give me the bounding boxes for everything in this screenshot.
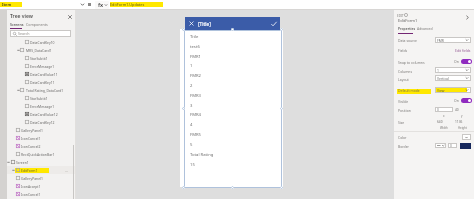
button[interactable]: StarSubtit1 [7, 94, 75, 102]
staticText: Position [398, 108, 411, 113]
button[interactable]: DataCardValue11 [7, 70, 75, 78]
other: Cancel [189, 21, 194, 26]
button[interactable]: Vertical [435, 75, 471, 81]
staticText: 1136 [455, 120, 463, 124]
staticText: Size [398, 120, 405, 125]
button[interactable]: 1 [435, 67, 471, 73]
staticText: GalleryPanel1 [21, 176, 43, 181]
staticText: Height [458, 126, 467, 130]
button[interactable]: Properties [398, 26, 416, 34]
button[interactable]: 640 [435, 119, 453, 124]
button[interactable]: ErrorMessage1 [7, 102, 75, 110]
button[interactable]: FMR [435, 37, 471, 43]
button[interactable]: Close tree view [67, 14, 73, 20]
button[interactable]: IconAccept1 [7, 182, 75, 190]
staticText: FMR2 [190, 73, 201, 79]
button[interactable]: Search [10, 30, 71, 37]
button[interactable]: View [435, 87, 471, 93]
button[interactable]: Screen1 [7, 158, 75, 166]
button[interactable]: Screens [10, 22, 24, 29]
staticText: Tree view [10, 13, 33, 20]
button[interactable]: DataCardKey11 [7, 78, 75, 86]
staticText: 5 [190, 142, 193, 148]
button[interactable]: MRS_DataCard1 [7, 46, 75, 54]
staticText: Border [398, 144, 409, 149]
button[interactable]: IconCancel1 [7, 134, 75, 142]
staticText: EDIT [397, 14, 404, 18]
staticText: 0 [437, 108, 439, 112]
staticText: ErrorMessage1 [30, 64, 55, 69]
button[interactable]: StarSubtit1 [7, 54, 75, 62]
button[interactable]: Components [26, 22, 48, 27]
button[interactable]: DataCardKey10 [7, 38, 75, 46]
button[interactable]: Total Rating_DataCard1 [7, 86, 75, 94]
button[interactable]: GalleryPanel1 [7, 174, 75, 182]
staticText: 40 [455, 108, 459, 112]
button[interactable]: Border style [435, 143, 446, 148]
button[interactable]: Edit fields [455, 48, 471, 53]
staticText: 3 [190, 103, 193, 109]
button[interactable]: 0 [448, 143, 457, 148]
staticText: On [454, 98, 459, 103]
staticText: Data source [398, 38, 418, 43]
staticText: Properties [398, 26, 416, 31]
staticText: 0 [450, 144, 452, 148]
staticText: Title [190, 34, 199, 40]
button[interactable] [110, 2, 163, 7]
button[interactable]: GalleryPanel1 [7, 126, 75, 134]
staticText: y [461, 114, 463, 118]
staticText: Default mode [398, 88, 420, 93]
button[interactable]: RectQuickActionBar1 [7, 150, 75, 158]
button[interactable]: Open panel [465, 15, 470, 20]
staticText: RectQuickActionBar1 [21, 152, 55, 157]
button[interactable]: ErrorMessage1 [7, 62, 75, 70]
staticText: fx [98, 1, 104, 8]
staticText: FMR5 [190, 132, 201, 138]
staticText: 1 [437, 68, 439, 73]
staticText: Columns [398, 69, 413, 74]
staticText: On [454, 59, 459, 64]
button[interactable]: 40 [453, 107, 471, 112]
staticText: FMR [437, 38, 444, 43]
staticText: MRS_DataCard1 [26, 48, 52, 53]
button[interactable]: Pick colour [462, 134, 471, 140]
button[interactable]: EditForm1 [7, 166, 75, 174]
staticText: Visible [398, 99, 409, 104]
staticText: GalleryPanel1 [21, 128, 43, 133]
other: Accept [271, 21, 277, 27]
button[interactable]: DataCardValue12 [7, 110, 75, 118]
staticText: Search [18, 31, 30, 36]
staticText: ... [65, 168, 68, 173]
staticText: 2 [190, 83, 193, 89]
button[interactable]: Advanced [417, 26, 433, 31]
button[interactable]: On [454, 98, 472, 103]
staticText: IconCancel1 [21, 136, 41, 141]
staticText: 4 [190, 122, 193, 128]
staticText: 640 [437, 120, 443, 124]
staticText: ErrorMessage1 [30, 104, 55, 109]
staticText: Screen1 [16, 160, 29, 165]
staticText: Total Rating_DataCard1 [26, 88, 64, 93]
button[interactable]: IconCancel1 [7, 190, 75, 198]
button[interactable] [0, 2, 22, 7]
button[interactable]: On [454, 59, 472, 64]
staticText: View [437, 88, 445, 93]
button[interactable]: IconCancel2 [7, 142, 75, 150]
staticText: EditForm1.Updates [110, 2, 145, 7]
button[interactable]: 1136 [453, 119, 471, 124]
button[interactable]: Formula bar [95, 1, 109, 9]
staticText: StarSubtit1 [30, 96, 48, 101]
staticText: EditForm1 [398, 18, 418, 23]
staticText: DataCardKey10 [30, 40, 55, 45]
staticText: StarSubtit1 [30, 56, 48, 61]
button[interactable]: 0 [435, 107, 453, 112]
button[interactable]: DataCardKey12 [7, 118, 75, 126]
button[interactable]: Cancel [185, 17, 280, 30]
staticText: IconCancel2 [21, 144, 41, 149]
staticText: Snap to columns [398, 60, 425, 65]
staticText: FMR4 [190, 112, 201, 118]
staticText: IconCancel1 [21, 192, 41, 197]
staticText: Layout [398, 77, 409, 82]
button[interactable]: Property dropdown [80, 2, 85, 7]
